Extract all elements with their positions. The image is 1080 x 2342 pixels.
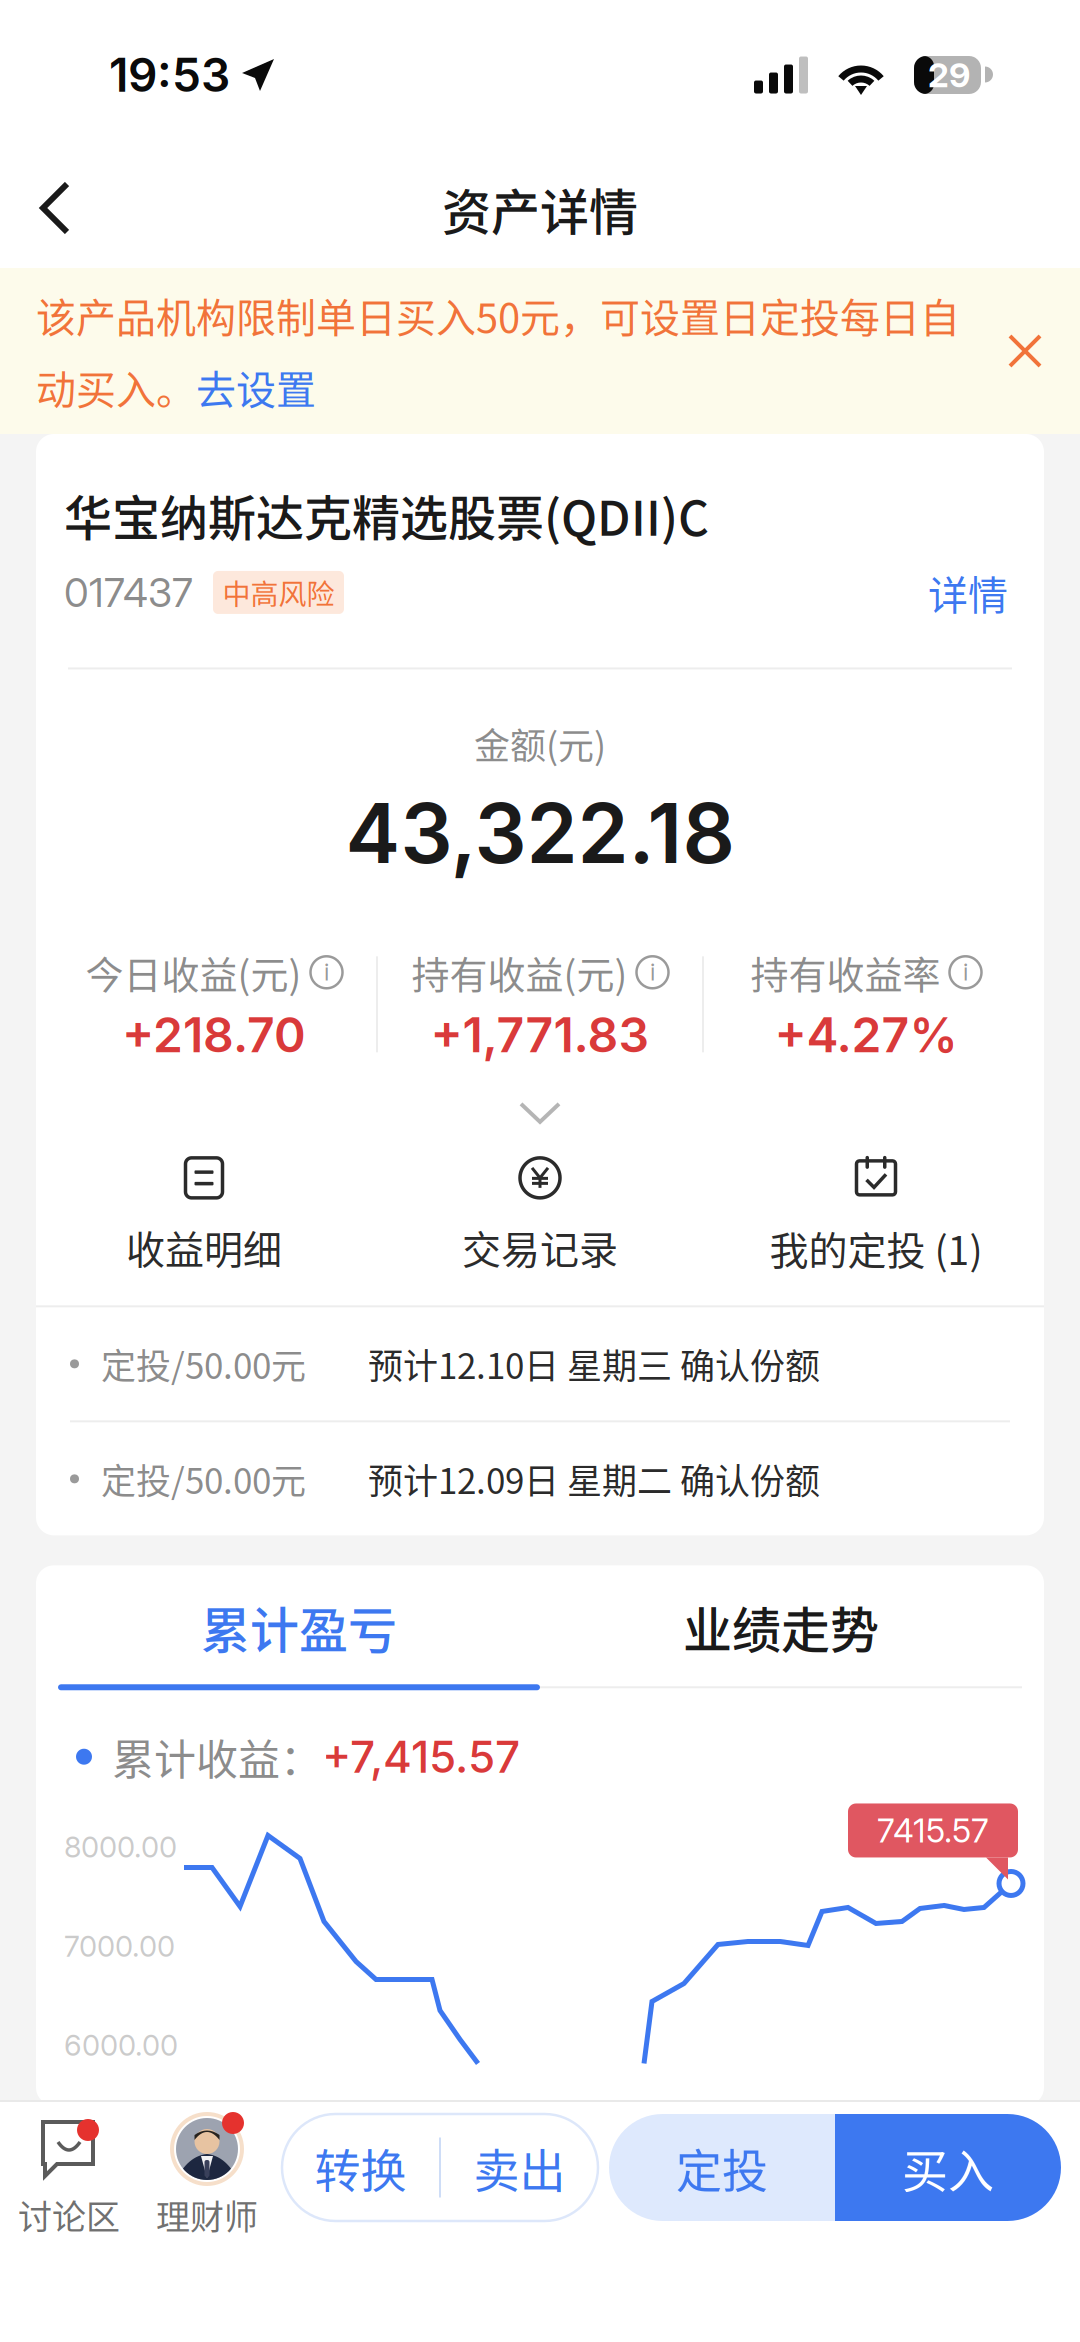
staticText: 金额(元) [474,717,606,769]
staticText: 29 [928,54,970,95]
button[interactable]: 业绩走势 [540,1565,1022,1690]
staticText: 该产品机构限制单日买入50元，可设置日定投每日自 [36,286,960,344]
staticText: 理财师 [156,2190,258,2239]
staticText: +7,415.57 [322,1730,520,1783]
staticText: 今日收益(元) [85,945,301,1000]
staticText: 定投/50.00元 [101,1453,306,1504]
staticText: 业绩走势 [683,1591,879,1662]
staticText: 持有收益率 [750,945,940,1000]
staticText: 我的定投 (1) [769,1220,982,1276]
staticText: 动买入。 [36,358,196,416]
button[interactable]: Expand [479,1088,601,1138]
button[interactable]: 我的定投 (1) [708,1148,1044,1284]
button[interactable]: 定投/50.00元 [36,1307,1044,1420]
button[interactable]: 今日收益(元) [52,939,376,1070]
staticText: i [650,959,655,986]
button[interactable]: 理财师 [151,2102,263,2239]
staticText: 6000.00 [64,2028,178,2063]
staticText: 资产详情 [442,173,638,244]
button[interactable]: 收益明细 [36,1149,372,1283]
button[interactable]: Close [984,310,1066,392]
staticText: 定投/50.00元 [101,1338,306,1389]
staticText: 交易记录 [462,1219,618,1275]
button[interactable]: 持有收益率 [704,939,1028,1070]
button[interactable]: 详情 [928,563,1008,621]
button[interactable]: 去设置 [196,358,316,416]
staticText: 华宝纳斯达克精选股票(QDII)C [64,480,709,549]
staticText: 累计盈亏 [201,1591,397,1662]
staticText: 累计收益： [112,1726,322,1787]
staticText: 7415.57 [877,1810,989,1850]
button[interactable]: 定投/50.00元 [36,1422,1044,1535]
button[interactable]: 定投 [609,2114,835,2221]
staticText: 19:53 [109,47,230,103]
staticText: 中高风险 [222,572,334,613]
staticText: 买入 [902,2134,994,2201]
button[interactable]: 讨论区 [13,2102,125,2239]
staticText: +218.70 [122,1006,306,1064]
button[interactable]: 持有收益(元) [378,939,702,1070]
staticText: 持有收益(元) [411,945,627,1000]
button[interactable]: 转换 [282,2114,439,2221]
staticText: 详情 [928,563,1008,621]
staticText: 017437 [64,568,193,617]
staticText: 43,322.18 [345,784,734,883]
staticText: 8000.00 [64,1829,177,1865]
staticText: +4.27% [774,1006,957,1064]
staticText: 定投 [676,2134,768,2201]
button[interactable]: 卖出 [441,2114,598,2221]
button[interactable]: Back [0,152,102,266]
button[interactable]: 买入 [835,2114,1061,2221]
button[interactable]: 交易记录 [372,1149,708,1283]
staticText: 收益明细 [126,1219,282,1275]
staticText: i [324,959,329,986]
staticText: 卖出 [473,2134,565,2201]
button[interactable]: 累计盈亏 [58,1565,540,1690]
staticText: +1,771.83 [430,1006,649,1064]
staticText: 讨论区 [18,2190,120,2239]
staticText: 预计12.09日 星期二 确认份额 [368,1453,820,1504]
staticText: i [963,959,968,986]
staticText: 预计12.10日 星期三 确认份额 [368,1338,820,1389]
staticText: 去设置 [196,358,316,416]
staticText: 转换 [314,2134,406,2201]
staticText: 7000.00 [64,1929,175,1964]
